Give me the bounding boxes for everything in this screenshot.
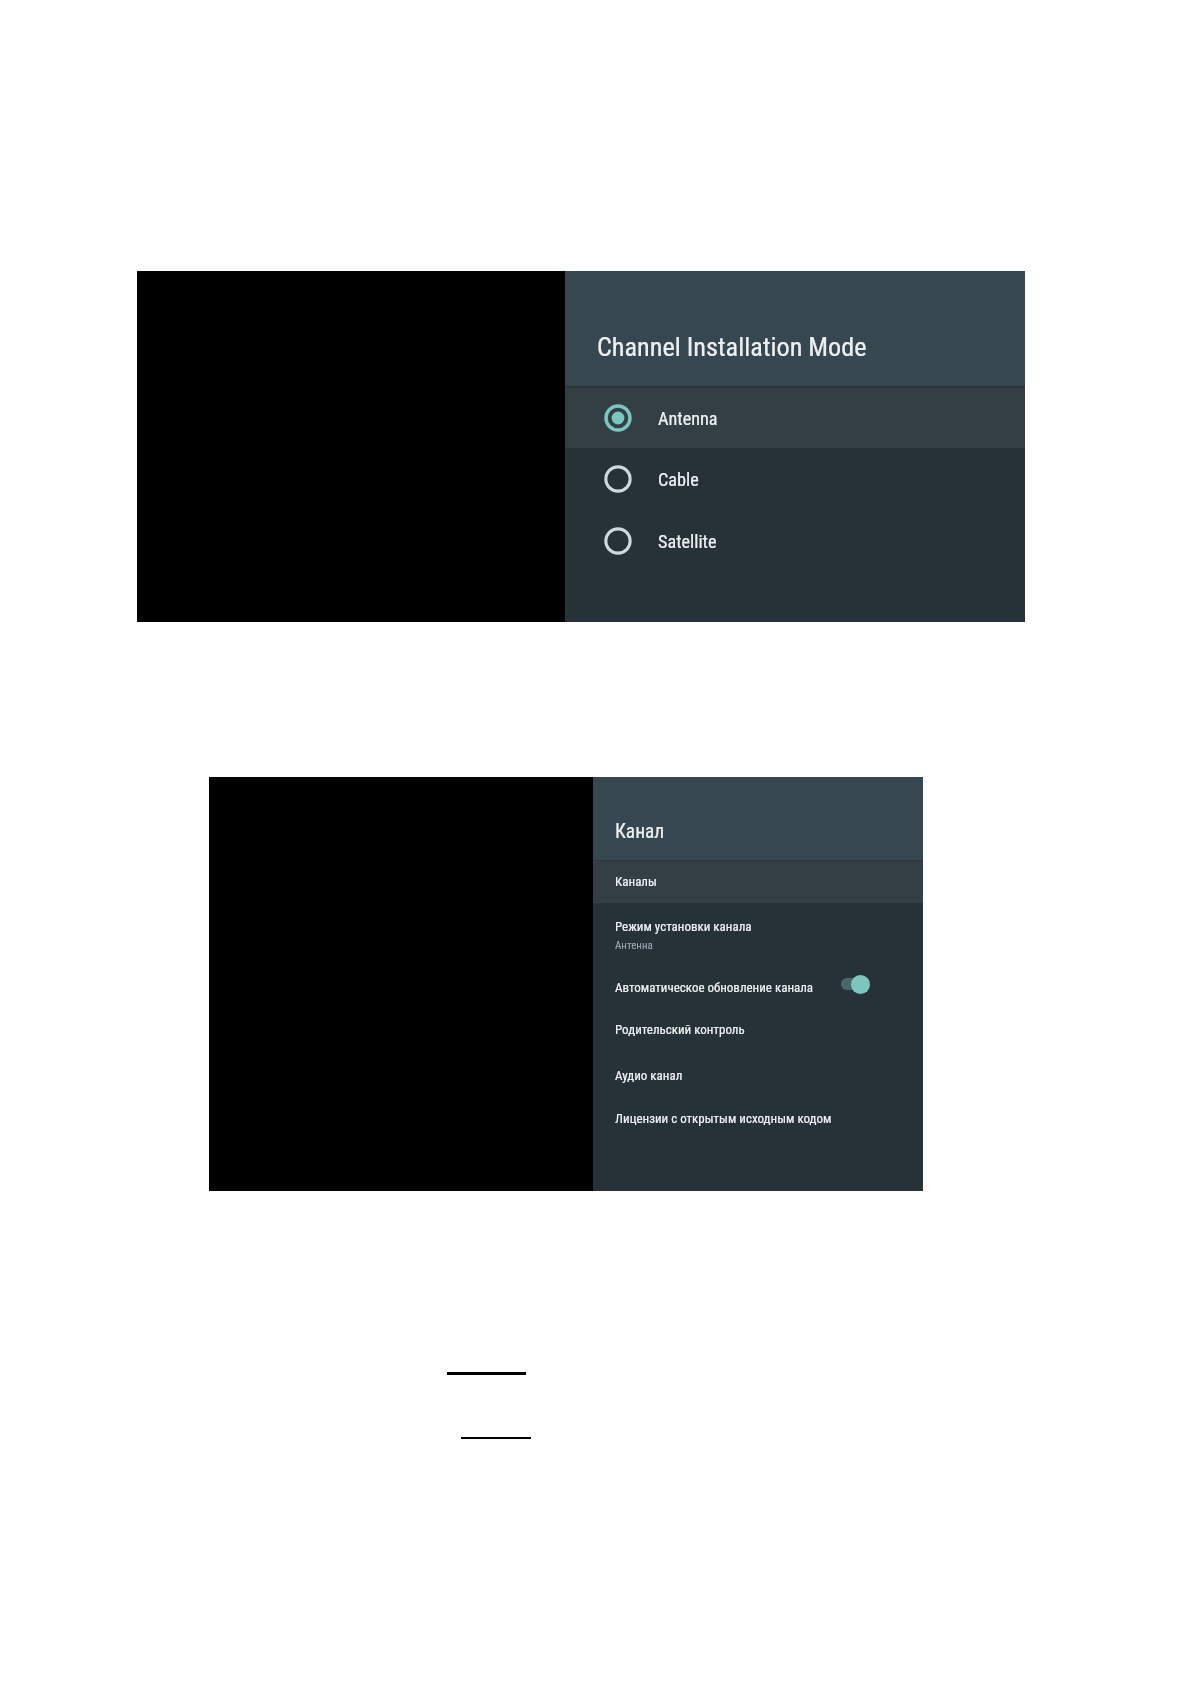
- button[interactable]: Satellite: [565, 510, 1025, 571]
- staticText: Лицензии с открытым исходным кодом: [615, 1111, 832, 1126]
- staticText: Cable: [658, 469, 699, 490]
- button[interactable]: Automatic channel update, on: [841, 975, 870, 994]
- staticText: Антенна: [615, 939, 653, 952]
- button[interactable]: Каналы: [593, 861, 923, 903]
- staticText: Antenna: [658, 408, 718, 429]
- staticText: Каналы: [615, 874, 657, 889]
- button[interactable]: Родительский контроль: [593, 1007, 923, 1051]
- staticText: Канал: [615, 820, 665, 843]
- staticText: Автоматическое обновление канала: [615, 980, 814, 995]
- staticText: Родительский контроль: [615, 1022, 745, 1037]
- staticText: Channel Installation Mode: [597, 332, 867, 363]
- button[interactable]: Лицензии с открытым исходным кодом: [593, 1096, 923, 1140]
- staticText: Аудио канал: [615, 1068, 683, 1083]
- staticText: Режим установки канала: [615, 919, 752, 934]
- button[interactable]: Автоматическое обновление канала: [593, 963, 923, 1007]
- staticText: Satellite: [658, 531, 717, 552]
- button[interactable]: Cable: [565, 448, 1025, 509]
- button[interactable]: Режим установки канала: [593, 904, 923, 963]
- button[interactable]: Antenna: [565, 388, 1025, 448]
- button[interactable]: Аудио канал: [593, 1052, 923, 1096]
